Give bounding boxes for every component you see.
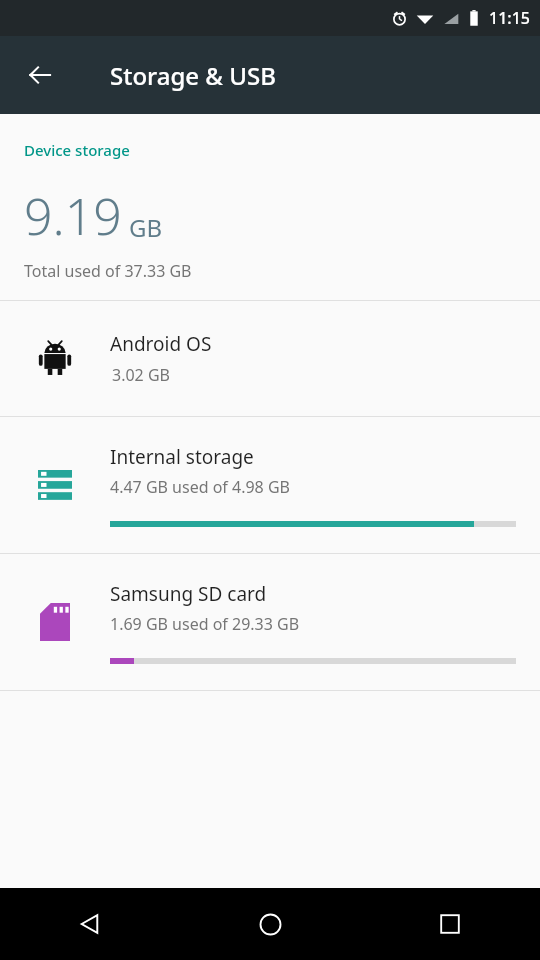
button[interactable]: Samsung SD card	[0, 554, 540, 690]
staticText: Total used of 37.33 GB	[24, 260, 192, 282]
staticText: 4.47 GB used of 4.98 GB	[110, 476, 290, 498]
staticText: Storage & USB	[110, 59, 276, 92]
staticText: Device storage	[24, 140, 130, 160]
button[interactable]: Android OS	[0, 301, 540, 416]
staticText: Internal storage	[110, 444, 254, 470]
staticText: Android OS	[110, 331, 212, 357]
staticText: 9.19	[24, 182, 122, 250]
button[interactable]: Back	[0, 888, 180, 960]
button[interactable]: Internal storage	[0, 417, 540, 553]
button[interactable]: Device storage	[0, 114, 540, 300]
staticText: 3.02 GB	[112, 364, 170, 386]
staticText: Samsung SD card	[110, 581, 267, 607]
button[interactable]: Recent apps	[360, 888, 540, 960]
button[interactable]: Back	[16, 51, 64, 99]
staticText: 11:15	[489, 7, 530, 29]
staticText: GB	[129, 211, 163, 244]
staticText: 1.69 GB used of 29.33 GB	[110, 613, 300, 635]
button[interactable]: Home	[180, 888, 360, 960]
